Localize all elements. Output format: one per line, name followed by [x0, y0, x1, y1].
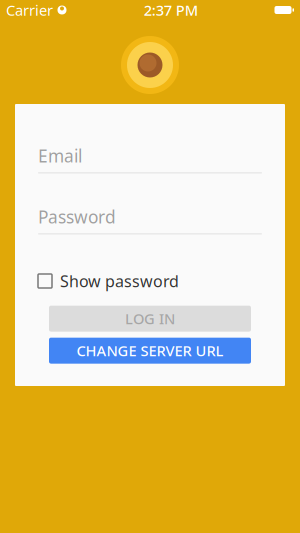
staticText: CHANGE SERVER URL	[76, 341, 223, 360]
staticText: LOG IN	[125, 309, 175, 328]
staticText: Password	[38, 205, 116, 228]
button[interactable]: CHANGE SERVER URL	[49, 338, 251, 364]
staticText: Email	[38, 144, 82, 167]
button[interactable]: LOG IN	[49, 306, 251, 332]
button[interactable]: Show password	[38, 270, 262, 292]
staticText: Carrier	[6, 0, 53, 20]
staticText: Show password	[60, 270, 179, 292]
staticText: 2:37 PM	[144, 0, 198, 20]
